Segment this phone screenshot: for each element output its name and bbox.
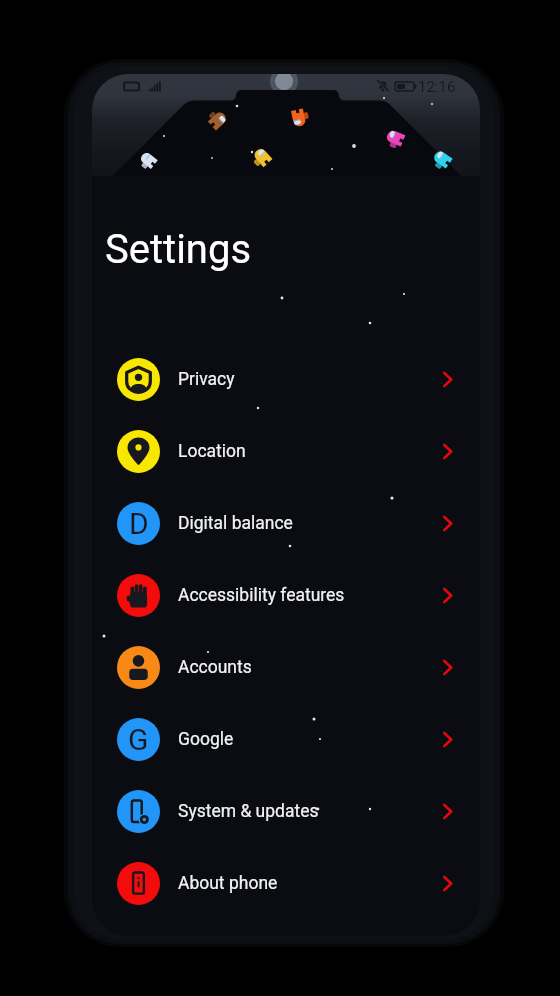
- staticText: Google: [178, 729, 234, 750]
- staticText: About phone: [178, 873, 278, 894]
- button[interactable]: Location: [92, 415, 480, 487]
- staticText: Privacy: [178, 369, 235, 390]
- button[interactable]: D: [92, 487, 480, 559]
- staticText: Accounts: [178, 657, 252, 678]
- staticText: Settings: [105, 226, 252, 273]
- button[interactable]: Privacy: [92, 343, 480, 415]
- button[interactable]: About phone: [92, 847, 480, 919]
- staticText: 12:16: [418, 78, 456, 96]
- staticText: G: [128, 722, 149, 757]
- button[interactable]: System & updates: [92, 775, 480, 847]
- button[interactable]: G: [92, 703, 480, 775]
- staticText: Accessibility features: [178, 585, 345, 606]
- staticText: D: [129, 506, 149, 541]
- button[interactable]: Accounts: [92, 631, 480, 703]
- staticText: Location: [178, 441, 246, 462]
- staticText: Digital balance: [178, 513, 293, 534]
- staticText: System & updates: [178, 801, 319, 822]
- button[interactable]: Accessibility features: [92, 559, 480, 631]
